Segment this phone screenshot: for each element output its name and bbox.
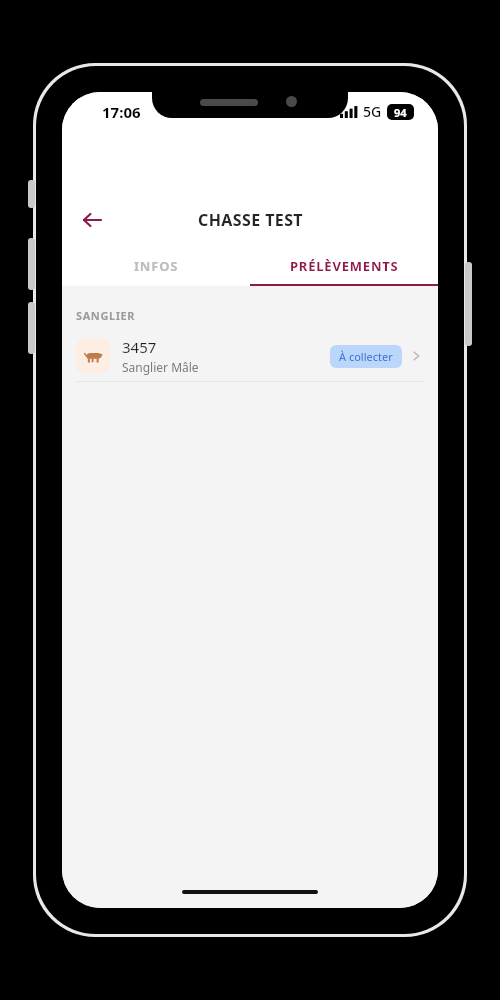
staticText: INFOS [134,257,179,275]
button[interactable]: 3457 [62,331,438,381]
staticText: SANGLIER [76,308,136,323]
button[interactable]: PRÉLÈVEMENTS [250,246,438,286]
staticText: 3457 [122,337,157,357]
staticText: 94 [394,105,407,120]
staticText: 5G [363,102,382,121]
button[interactable]: Back [70,198,114,242]
staticText: CHASSE TEST [198,209,303,231]
staticText: PRÉLÈVEMENTS [290,257,399,275]
staticText: Sanglier Mâle [122,359,199,375]
button[interactable]: INFOS [62,246,250,286]
staticText: À collecter [339,349,393,364]
button[interactable]: À collecter [330,345,402,368]
other: Details [408,348,424,364]
staticText: 17:06 [102,102,141,122]
